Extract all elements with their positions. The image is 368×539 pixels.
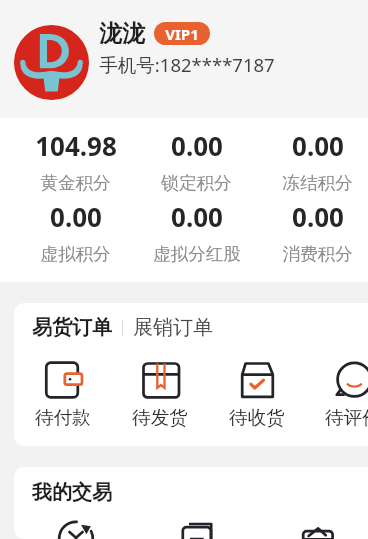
button[interactable]: 待收货 — [208, 360, 305, 429]
staticText: 0.00 — [292, 199, 344, 234]
staticText: 我的交易 — [32, 480, 112, 505]
button[interactable]: 0.00 — [257, 199, 368, 265]
staticText: 待付款 — [35, 406, 91, 429]
staticText: 展销订单 — [133, 315, 213, 340]
staticText: 待评价 — [325, 406, 368, 429]
other: 购物车 — [298, 519, 338, 539]
staticText: 虚拟积分 — [40, 243, 111, 265]
staticText: VIP1 — [165, 24, 199, 44]
staticText: 冻结积分 — [282, 172, 353, 194]
staticText: 泷泷 — [99, 19, 145, 48]
button[interactable]: 展销订单 — [133, 315, 213, 340]
button[interactable]: 收支明细 — [15, 519, 136, 539]
button[interactable]: 待付款 — [14, 360, 111, 429]
staticText: 锁定积分 — [161, 172, 232, 194]
button[interactable]: Profile avatar — [14, 25, 89, 100]
button[interactable]: 易货订单 — [32, 315, 112, 340]
button[interactable]: 104.98 — [15, 128, 136, 194]
button[interactable]: 待发货 — [111, 360, 208, 429]
button[interactable]: 0.00 — [257, 128, 368, 194]
button[interactable]: 0.00 — [15, 199, 136, 265]
button[interactable]: 待评价 — [305, 360, 368, 429]
button[interactable]: VIP1 — [154, 22, 210, 45]
staticText: 黄金积分 — [40, 172, 111, 194]
staticText: 104.98 — [35, 128, 117, 163]
button[interactable]: 0.00 — [136, 128, 257, 194]
staticText: 虚拟分红股 — [153, 243, 241, 265]
staticText: 待收货 — [229, 406, 285, 429]
staticText: 易货订单 — [32, 315, 112, 340]
staticText: 0.00 — [292, 128, 344, 163]
button[interactable]: 我的订单 — [136, 519, 257, 539]
staticText: 0.00 — [171, 128, 223, 163]
staticText: 0.00 — [171, 199, 223, 234]
staticText: 待发货 — [132, 406, 188, 429]
other: 收支明细 — [56, 519, 96, 539]
staticText: 0.00 — [50, 199, 102, 234]
button[interactable]: 购物车 — [257, 519, 368, 539]
other: 我的订单 — [177, 519, 217, 539]
staticText: 消费积分 — [282, 243, 353, 265]
staticText: 手机号:182****7187 — [99, 52, 275, 77]
button[interactable]: 0.00 — [136, 199, 257, 265]
